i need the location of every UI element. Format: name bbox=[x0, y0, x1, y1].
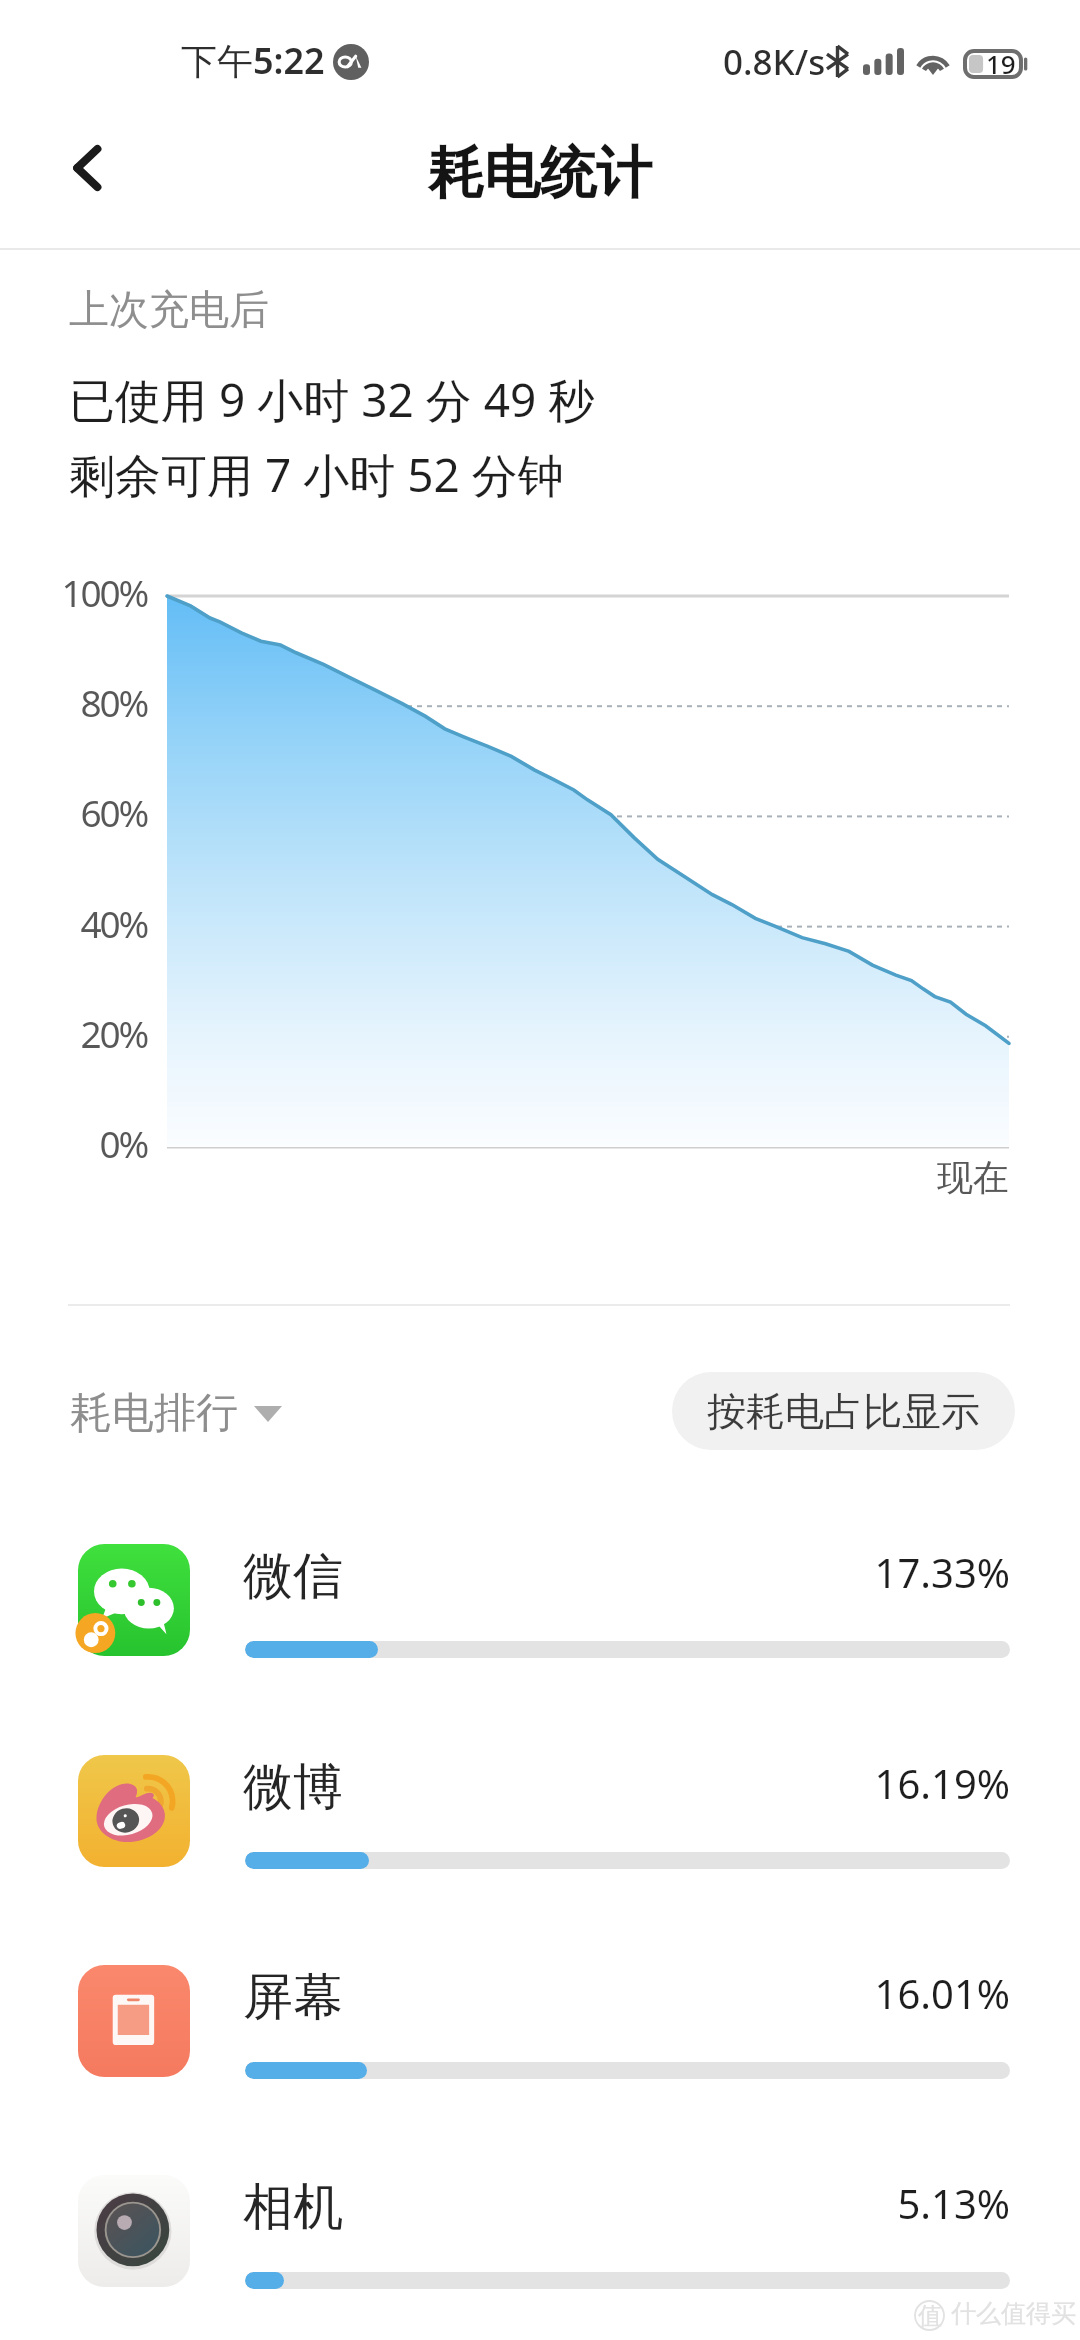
staticText: 相机 bbox=[243, 2176, 343, 2239]
staticText: 下午5:22 bbox=[181, 36, 325, 85]
button[interactable]: 微博 bbox=[0, 1733, 1080, 1891]
staticText: 微博 bbox=[243, 1756, 343, 1819]
staticText: 什么值得买 bbox=[951, 2298, 1076, 2329]
staticText: 80% bbox=[0, 677, 147, 727]
staticText: 耗电统计 bbox=[428, 138, 652, 209]
staticText: 0.8K/s bbox=[723, 38, 826, 86]
button[interactable]: 屏幕 bbox=[0, 1943, 1080, 2101]
staticText: 16.01% bbox=[609, 1966, 1010, 2020]
staticText: 已使用 9 小时 32 分 49 秒 bbox=[69, 368, 595, 431]
button[interactable]: 相机 bbox=[0, 2153, 1080, 2311]
staticText: 16.19% bbox=[609, 1756, 1010, 1810]
staticText: 屏幕 bbox=[243, 1966, 343, 2029]
button[interactable]: 微信 bbox=[0, 1522, 1080, 1680]
staticText: 60% bbox=[0, 787, 147, 837]
button[interactable]: 耗电排行 bbox=[70, 1387, 282, 1440]
staticText: 现在 bbox=[829, 1155, 1009, 1200]
staticText: 上次充电后 bbox=[69, 284, 269, 334]
staticText: 0% bbox=[0, 1118, 147, 1168]
staticText: 19 bbox=[986, 46, 1016, 81]
staticText: 40% bbox=[0, 898, 147, 948]
staticText: 微信 bbox=[243, 1545, 343, 1608]
staticText: 值 bbox=[918, 2301, 942, 2331]
staticText: 剩余可用 7 小时 52 分钟 bbox=[69, 443, 564, 506]
staticText: 17.33% bbox=[609, 1545, 1010, 1599]
button[interactable]: Back bbox=[50, 130, 126, 206]
staticText: 5.13% bbox=[609, 2176, 1010, 2230]
staticText: 耗电排行 bbox=[70, 1387, 238, 1440]
button[interactable]: 按耗电占比显示 bbox=[672, 1372, 1015, 1450]
staticText: 按耗电占比显示 bbox=[707, 1387, 980, 1436]
staticText: 20% bbox=[0, 1008, 147, 1058]
staticText: 100% bbox=[0, 567, 147, 617]
